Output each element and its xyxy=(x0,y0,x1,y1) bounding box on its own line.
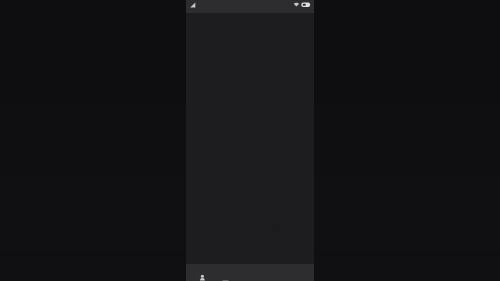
button[interactable]: Profile xyxy=(186,264,214,281)
button[interactable]: Home xyxy=(214,264,242,281)
